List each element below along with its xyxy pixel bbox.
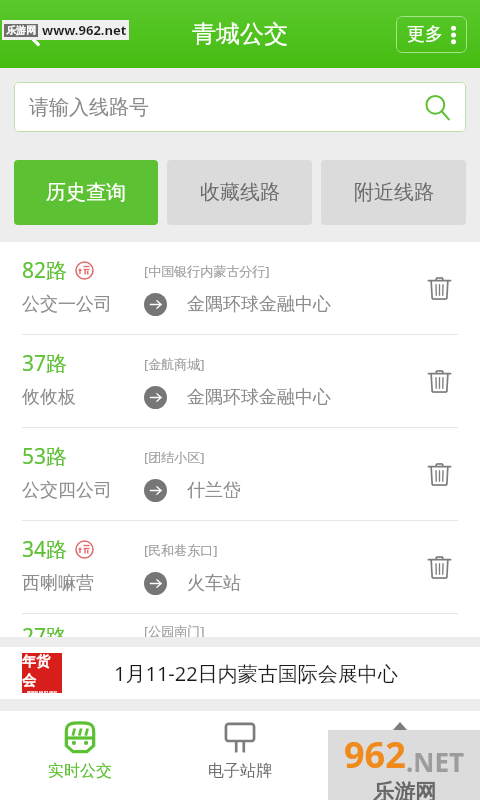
staticText: 金隅环球金融中心 (187, 386, 331, 409)
button[interactable]: 53路 (0, 428, 480, 520)
button[interactable]: Delete (416, 358, 462, 404)
staticText: 西喇嘛营 (22, 572, 94, 595)
staticText: NIAN HUO HUI (27, 690, 57, 693)
button[interactable]: 电子站牌 (160, 711, 320, 789)
button[interactable]: 82路 (0, 242, 480, 334)
staticText: 公交一公司 (22, 293, 112, 316)
staticText: 1月11-22日内蒙古国际会展中心 (114, 660, 398, 687)
staticText: [公园南门] (144, 622, 205, 637)
staticText: 电子站牌 (208, 761, 272, 781)
button[interactable]: 更多 (396, 16, 467, 53)
staticText: 年货会 (22, 653, 62, 689)
staticText: [民和巷东口] (144, 541, 218, 559)
button[interactable]: 年货会 (0, 647, 480, 699)
staticText: www.962.net (42, 21, 127, 39)
button[interactable]: 附近线路 (321, 160, 466, 225)
staticText: 53路 (22, 442, 68, 471)
staticText: 附近线路 (354, 180, 434, 205)
button[interactable]: Back (0, 0, 66, 68)
button[interactable]: Delete (416, 544, 462, 590)
staticText: 请输入线路号 (29, 95, 424, 120)
other: Search (424, 94, 451, 121)
staticText: 乐游网 (6, 24, 36, 37)
button[interactable]: 34路 (0, 521, 480, 613)
staticText: [团结小区] (144, 448, 205, 466)
button[interactable]: Delete (416, 451, 462, 497)
button[interactable]: 37路 (0, 335, 480, 427)
staticText: 金隅环球金融中心 (187, 293, 331, 316)
staticText: 34路 (22, 535, 68, 564)
staticText: 青城公交 (192, 19, 288, 49)
button[interactable]: 历史查询 (14, 160, 158, 225)
staticText: 27路 (22, 622, 68, 637)
staticText: 攸攸板 (22, 386, 76, 409)
button[interactable]: Delete (416, 265, 462, 311)
staticText: 实时公交 (48, 761, 112, 781)
button[interactable]: 收藏线路 (167, 160, 312, 225)
staticText: [金航商城] (144, 355, 205, 373)
button[interactable]: 实时公交 (0, 711, 160, 789)
staticText: 962 (344, 730, 406, 779)
staticText: 火车站 (187, 572, 241, 595)
staticText: 更多 (407, 23, 443, 46)
staticText: .NET (406, 744, 465, 779)
staticText: 收藏线路 (200, 180, 280, 205)
staticText: 37路 (22, 349, 68, 378)
staticText: [中国银行内蒙古分行] (144, 262, 270, 280)
button[interactable]: 请输入线路号 (14, 82, 466, 132)
staticText: 什兰岱 (187, 479, 241, 502)
staticText: 公交四公司 (22, 479, 112, 502)
button[interactable]: 出行工具 (320, 711, 480, 789)
staticText: 出行工具 (368, 761, 432, 781)
staticText: 历史查询 (46, 180, 126, 205)
staticText: 82路 (22, 256, 68, 285)
staticText: 乐游网 (373, 779, 436, 800)
